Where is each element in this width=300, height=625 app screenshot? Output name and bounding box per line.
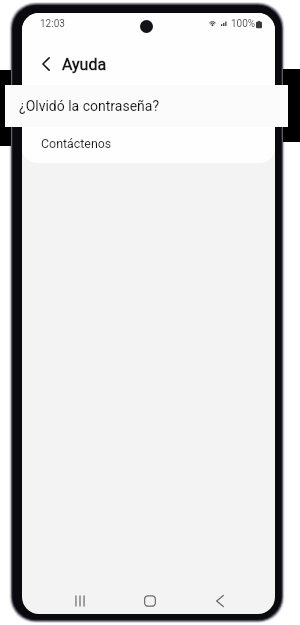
staticText: 100% xyxy=(231,18,256,30)
button[interactable]: Back xyxy=(34,52,58,76)
button[interactable]: Contáctenos xyxy=(22,130,275,156)
staticText: ¿Olvidó la contraseña? xyxy=(19,98,160,114)
staticText: Ayuda xyxy=(62,55,107,74)
button[interactable]: Recents xyxy=(48,584,112,614)
button[interactable]: Home xyxy=(118,584,182,614)
staticText: Contáctenos xyxy=(41,136,112,151)
button[interactable]: Back xyxy=(188,584,252,614)
button[interactable]: ¿Olvidó la contraseña? xyxy=(5,85,288,127)
staticText: 12:03 xyxy=(40,18,65,30)
